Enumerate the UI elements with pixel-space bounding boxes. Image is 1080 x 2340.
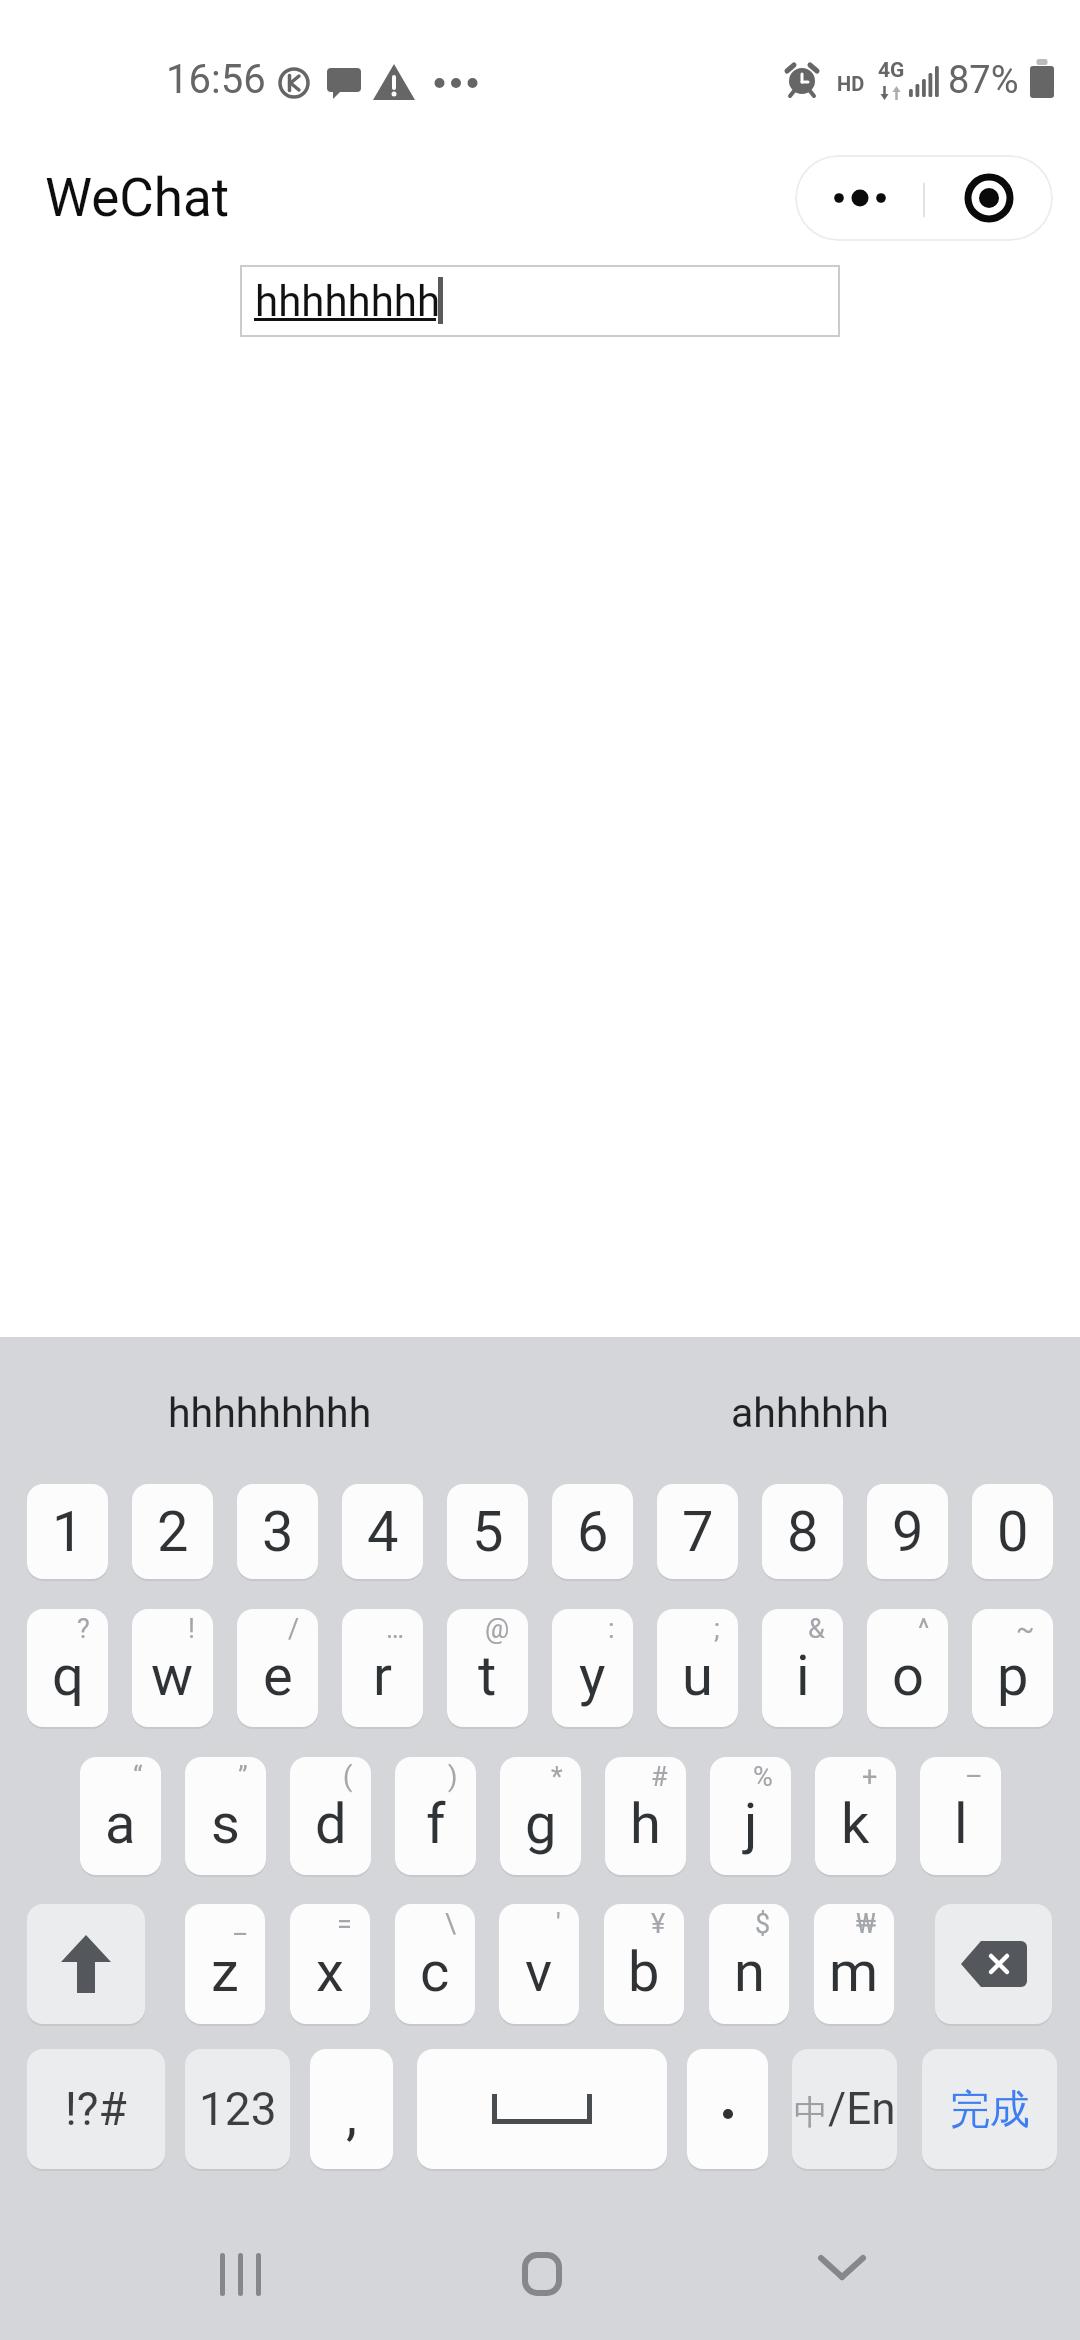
staticText: & <box>808 1613 825 1645</box>
staticText: ; <box>714 1613 720 1645</box>
button[interactable]: 3 <box>237 1484 318 1579</box>
button[interactable] <box>818 2255 866 2281</box>
staticText: x <box>316 1939 344 2005</box>
staticText: \ <box>445 1908 457 1940</box>
button[interactable]: 6 <box>552 1484 633 1579</box>
button[interactable]: @ <box>447 1609 528 1727</box>
button[interactable]: ₩ <box>814 1904 894 2024</box>
staticText: ' <box>556 1908 561 1940</box>
button[interactable]: “ <box>80 1757 161 1875</box>
staticText: , <box>346 2082 358 2148</box>
staticText: s <box>211 1791 240 1857</box>
staticText: ? <box>77 1613 90 1645</box>
staticText: t <box>478 1643 497 1709</box>
button[interactable]: 0 <box>972 1484 1053 1579</box>
button[interactable] <box>795 155 924 241</box>
staticText: 完成 <box>950 2084 1030 2134</box>
staticText: / <box>288 1613 300 1645</box>
button[interactable]: – <box>920 1757 1001 1875</box>
staticText: @ <box>485 1613 510 1645</box>
button[interactable]: ahhhhhh <box>540 1383 1080 1443</box>
staticText: ! <box>188 1613 195 1645</box>
button[interactable] <box>935 1904 1052 2024</box>
staticText: u <box>682 1643 713 1709</box>
button[interactable]: 8 <box>762 1484 843 1579</box>
staticText: o <box>892 1643 924 1709</box>
staticText: p <box>997 1643 1029 1709</box>
button[interactable]: 5 <box>447 1484 528 1579</box>
staticText: ₩ <box>856 1908 876 1940</box>
staticText: c <box>420 1939 450 2005</box>
staticText: 1 <box>52 1499 84 1565</box>
button[interactable]: 123 <box>185 2049 290 2169</box>
button[interactable]: 7 <box>657 1484 738 1579</box>
button[interactable]: ? <box>27 1609 108 1727</box>
button[interactable]: hhhhhhhh <box>240 265 840 337</box>
button[interactable]: ) <box>395 1757 476 1875</box>
staticText: ( <box>343 1761 353 1793</box>
button[interactable]: * <box>500 1757 581 1875</box>
staticText: m <box>829 1939 879 2005</box>
button[interactable]: ¥ <box>604 1904 684 2024</box>
button[interactable]: ; <box>657 1609 738 1727</box>
button[interactable]: 中/En <box>792 2049 897 2169</box>
button[interactable] <box>417 2049 667 2169</box>
button[interactable] <box>522 2252 562 2296</box>
staticText: ahhhhhh <box>731 1389 889 1437</box>
button[interactable]: hhhhhhhhh <box>0 1383 540 1443</box>
staticText: 87% <box>948 58 1019 103</box>
staticText: ^ <box>918 1613 930 1645</box>
button[interactable]: 9 <box>867 1484 948 1579</box>
staticText: 123 <box>199 2082 277 2136</box>
staticText: f <box>426 1791 446 1857</box>
button[interactable] <box>924 155 1053 241</box>
button[interactable]: !?# <box>27 2049 165 2169</box>
staticText: b <box>628 1939 660 2005</box>
staticText: $ <box>755 1908 771 1940</box>
button[interactable]: ” <box>185 1757 266 1875</box>
button[interactable]: % <box>710 1757 791 1875</box>
staticText: ) <box>448 1761 458 1793</box>
button[interactable]: _ <box>185 1904 265 2024</box>
button[interactable]: ' <box>499 1904 579 2024</box>
button[interactable] <box>27 1904 145 2024</box>
staticText: 6 <box>577 1499 609 1565</box>
button[interactable]: $ <box>709 1904 789 2024</box>
button[interactable]: / <box>237 1609 318 1727</box>
staticText: g <box>525 1791 557 1857</box>
staticText: 2 <box>157 1499 189 1565</box>
button[interactable]: ^ <box>867 1609 948 1727</box>
staticText: … <box>386 1613 405 1645</box>
staticText: 4 <box>367 1499 399 1565</box>
button[interactable]: 1 <box>27 1484 108 1579</box>
button[interactable]: 2 <box>132 1484 213 1579</box>
button[interactable]: … <box>342 1609 423 1727</box>
button[interactable]: = <box>290 1904 370 2024</box>
staticText: 0 <box>997 1499 1029 1565</box>
staticText: z <box>211 1939 239 2005</box>
button[interactable]: ( <box>290 1757 371 1875</box>
staticText: 5 <box>472 1499 504 1565</box>
button[interactable]: ~ <box>972 1609 1053 1727</box>
staticText: j <box>744 1791 758 1857</box>
button[interactable] <box>687 2049 768 2169</box>
button[interactable]: 4 <box>342 1484 423 1579</box>
button[interactable]: \ <box>395 1904 475 2024</box>
button[interactable]: , <box>310 2049 393 2169</box>
button[interactable]: # <box>605 1757 686 1875</box>
staticText: !?# <box>65 2082 127 2136</box>
button[interactable]: & <box>762 1609 843 1727</box>
staticText: q <box>52 1643 84 1709</box>
staticText: h <box>630 1791 661 1857</box>
staticText: “ <box>133 1761 143 1793</box>
button[interactable]: ! <box>132 1609 213 1727</box>
staticText: 中/En <box>794 2083 896 2135</box>
staticText: WeChat <box>45 167 230 229</box>
staticText: v <box>525 1939 553 2005</box>
staticText: 7 <box>682 1499 714 1565</box>
button[interactable]: : <box>552 1609 633 1727</box>
staticText: i <box>796 1643 810 1709</box>
button[interactable]: + <box>815 1757 896 1875</box>
button[interactable] <box>220 2253 266 2296</box>
button[interactable]: 完成 <box>922 2049 1057 2169</box>
